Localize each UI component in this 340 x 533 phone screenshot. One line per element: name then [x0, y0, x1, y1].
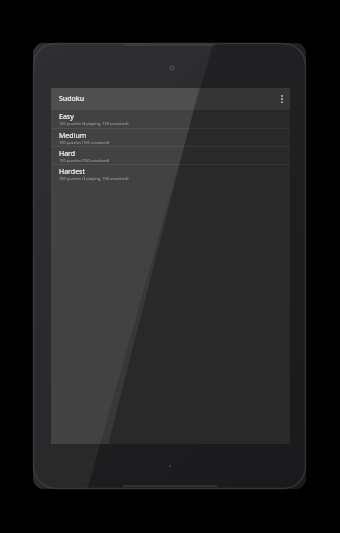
staticText: 100 puzzles (4 playing, 129 unsolved) — [59, 121, 129, 126]
button[interactable]: Sudoku — [51, 88, 290, 110]
button[interactable]: Hardest — [51, 165, 290, 182]
staticText: Easy — [59, 112, 74, 122]
staticText: 100 puzzles (100 unsolved) — [59, 158, 110, 163]
button[interactable]: More options — [274, 88, 290, 110]
staticText: Sudoku — [59, 94, 85, 104]
staticText: 100 puzzles (100 unsolved) — [59, 140, 110, 145]
staticText: 100 puzzles (3 playing, 100 unsolved) — [59, 176, 129, 181]
staticText: Hardest — [59, 167, 85, 177]
staticText: Hard — [59, 149, 76, 159]
button[interactable]: Easy — [51, 110, 290, 128]
button[interactable]: Hard — [51, 147, 290, 164]
button[interactable]: Medium — [51, 129, 290, 146]
staticText: Medium — [59, 131, 87, 141]
